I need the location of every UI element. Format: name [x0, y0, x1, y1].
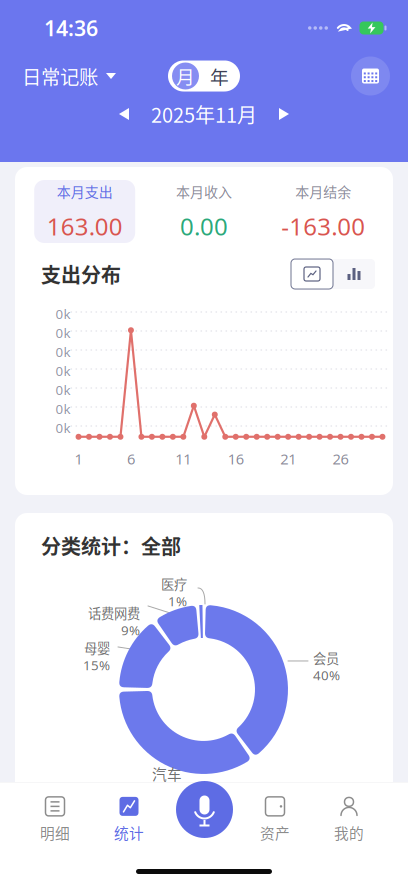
button[interactable]: 明细: [18, 792, 92, 848]
button[interactable]: 本月支出: [25, 180, 144, 243]
button[interactable]: 年: [201, 62, 238, 89]
button[interactable]: Calendar: [351, 56, 390, 95]
staticText: 21: [280, 449, 296, 468]
staticText: 0k: [55, 305, 70, 323]
staticText: 16: [228, 449, 244, 468]
staticText: 月: [176, 62, 195, 89]
staticText: 14:36: [44, 14, 98, 42]
staticText: -163.00: [281, 210, 365, 242]
staticText: 日常记账: [22, 62, 98, 90]
staticText: 0k: [55, 419, 70, 437]
staticText: 话费网费: [88, 603, 140, 622]
staticText: 本月结余: [295, 181, 351, 201]
button[interactable]: 资产: [238, 792, 312, 848]
staticText: 资产: [260, 822, 290, 843]
staticText: 0k: [55, 381, 70, 399]
button[interactable]: Line chart: [291, 259, 333, 289]
staticText: 本月收入: [176, 181, 232, 201]
staticText: 汽车: [152, 763, 182, 784]
staticText: 1: [74, 449, 82, 468]
button[interactable]: Bar chart: [333, 259, 375, 289]
staticText: 2025年11月: [151, 99, 257, 128]
staticText: 40%: [313, 666, 340, 684]
staticText: 6: [127, 449, 135, 468]
button[interactable]: 我的: [312, 792, 386, 848]
staticText: 0.00: [180, 210, 228, 242]
staticText: 163.00: [47, 210, 123, 242]
staticText: 15%: [83, 656, 110, 674]
staticText: 0k: [55, 400, 70, 418]
staticText: 9%: [121, 621, 140, 639]
staticText: 支出分布: [41, 259, 121, 288]
staticText: 0k: [55, 362, 70, 380]
button[interactable]: 本月结余: [264, 180, 383, 243]
staticText: 1%: [168, 592, 187, 610]
staticText: 11: [175, 449, 191, 468]
button[interactable]: Next month: [271, 100, 297, 128]
button[interactable]: 统计: [92, 792, 166, 848]
staticText: 年: [210, 62, 229, 89]
button[interactable]: Previous month: [111, 100, 137, 128]
staticText: 分类统计：全部: [41, 531, 181, 560]
staticText: 我的: [334, 822, 364, 843]
button[interactable]: 日常记账: [22, 62, 116, 90]
staticText: 26: [332, 449, 348, 468]
staticText: 会员: [313, 648, 339, 667]
button[interactable]: Voice input: [176, 781, 233, 838]
staticText: 统计: [114, 822, 144, 843]
button[interactable]: 月: [170, 62, 201, 89]
staticText: 明细: [40, 822, 70, 843]
button[interactable]: 本月收入: [144, 180, 264, 243]
staticText: 母婴: [84, 638, 110, 657]
staticText: 0k: [55, 324, 70, 342]
staticText: 本月支出: [57, 181, 113, 201]
staticText: 医疗: [161, 574, 187, 593]
staticText: 0k: [55, 343, 70, 361]
